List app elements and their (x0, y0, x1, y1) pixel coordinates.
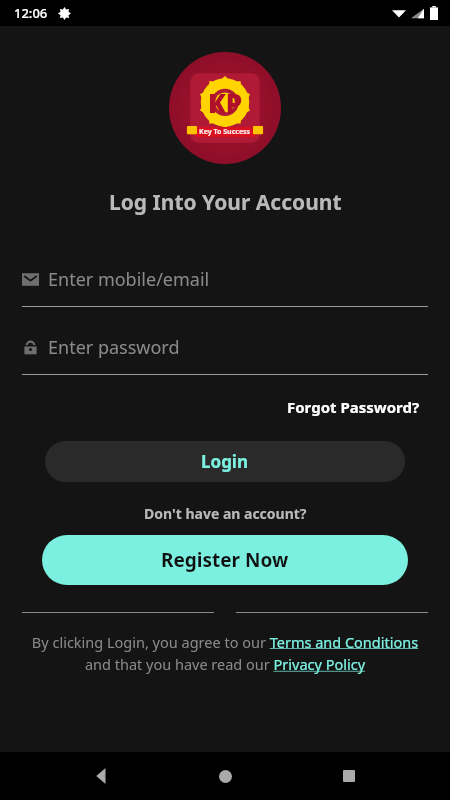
staticText: Key To Success (199, 127, 251, 137)
button[interactable]: Enter password (22, 335, 428, 375)
button[interactable]: Login (45, 441, 405, 482)
staticText: By clicking Login, you agree to our Term… (22, 632, 428, 674)
button[interactable]: Forgot Password? (283, 393, 424, 421)
staticText: Enter mobile/email (48, 267, 210, 292)
staticText: Enter password (48, 335, 180, 360)
staticText: Login (201, 450, 249, 473)
staticText: Don't have an account? (144, 504, 307, 523)
button[interactable]: By clicking Login, you agree to our Term… (22, 632, 428, 674)
staticText: 12:06 (14, 4, 48, 22)
staticText: Log Into Your Account (109, 188, 342, 217)
button[interactable]: Recents (327, 754, 371, 798)
button[interactable]: Home (203, 754, 247, 798)
button[interactable]: Enter mobile/email (22, 267, 428, 307)
button[interactable]: Register Now (42, 535, 408, 585)
button[interactable]: Back (80, 754, 124, 798)
staticText: KP (208, 85, 243, 120)
staticText: Forgot Password? (287, 397, 420, 417)
staticText: Register Now (161, 547, 289, 573)
